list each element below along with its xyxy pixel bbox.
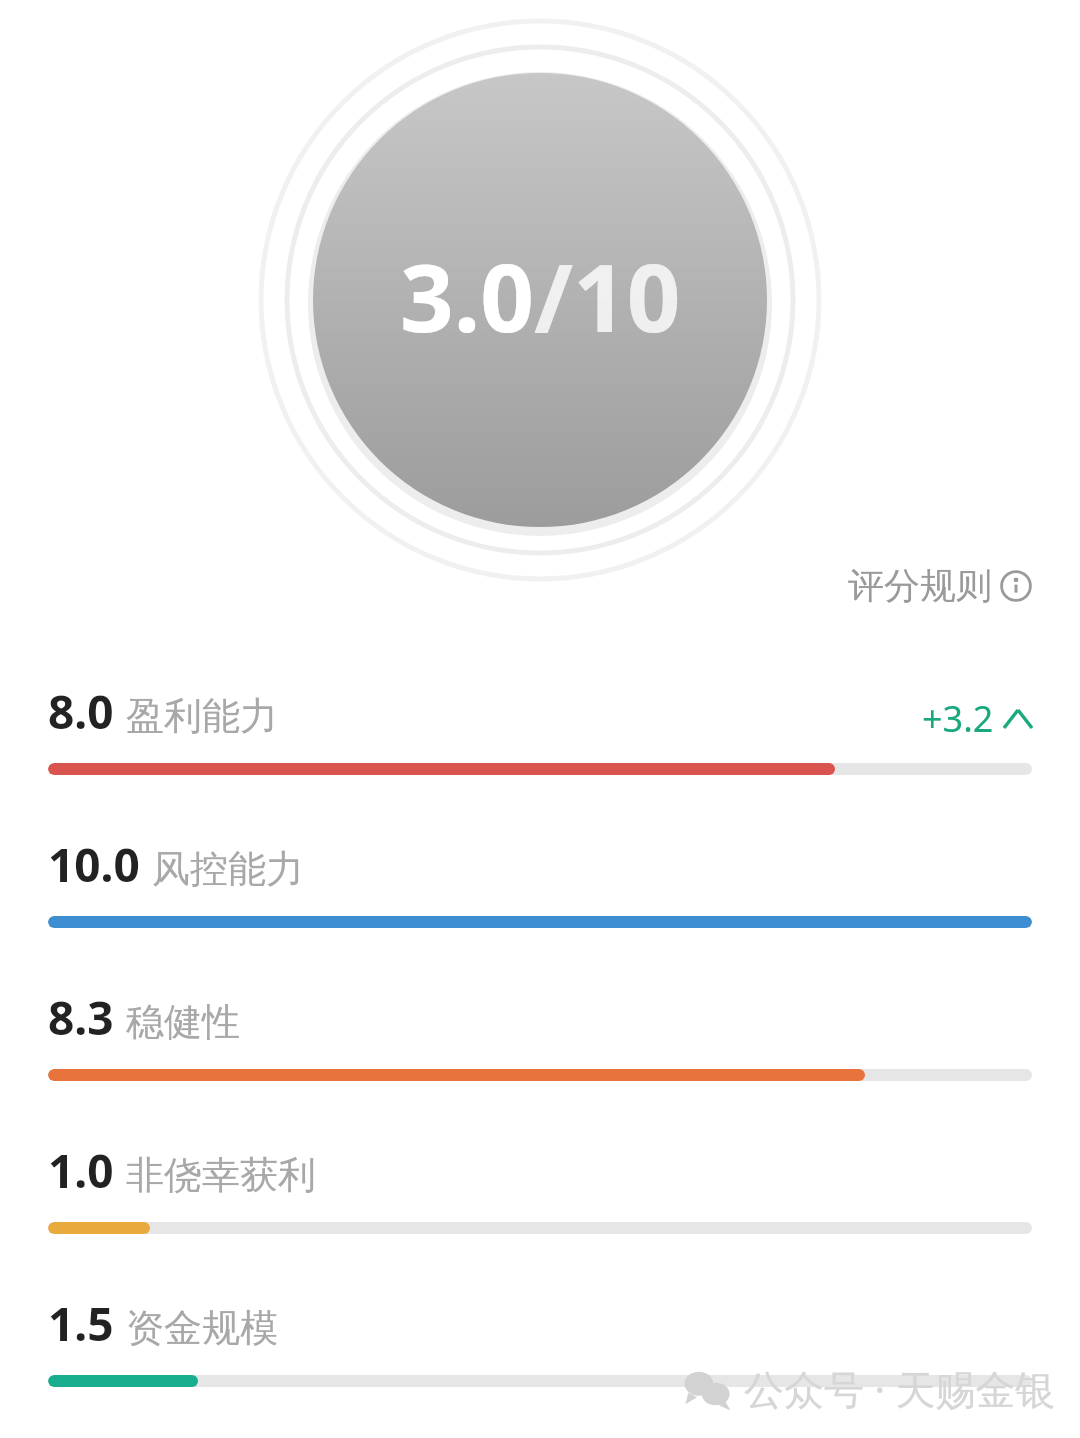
staticText: 盈利能力 xyxy=(126,692,278,740)
button[interactable]: 1.0 xyxy=(0,1139,1080,1234)
staticText: 10.0 xyxy=(48,833,140,896)
button[interactable]: 评分规则 xyxy=(844,559,1036,612)
button[interactable]: 8.0 xyxy=(0,680,1080,775)
button[interactable]: 1.5 xyxy=(0,1292,1080,1387)
staticText: 风控能力 xyxy=(152,845,304,893)
staticText: +3.2 xyxy=(922,694,994,743)
staticText: 8.3 xyxy=(48,986,114,1049)
button[interactable]: 8.3 xyxy=(0,986,1080,1081)
other: WeChat official account xyxy=(684,1365,732,1413)
staticText: /10 xyxy=(534,232,681,360)
staticText: 公众号 · 天赐金银 xyxy=(744,1361,1056,1416)
staticText: 评分规则 xyxy=(848,563,992,608)
staticText: 稳健性 xyxy=(126,998,240,1046)
staticText: 8.0 xyxy=(48,680,114,743)
staticText: 1.5 xyxy=(48,1292,114,1355)
staticText: 资金规模 xyxy=(126,1304,278,1352)
button[interactable]: 10.0 xyxy=(0,833,1080,928)
staticText: 3.0 xyxy=(400,232,534,360)
staticText: 非侥幸获利 xyxy=(126,1151,316,1199)
staticText: 1.0 xyxy=(48,1139,114,1202)
